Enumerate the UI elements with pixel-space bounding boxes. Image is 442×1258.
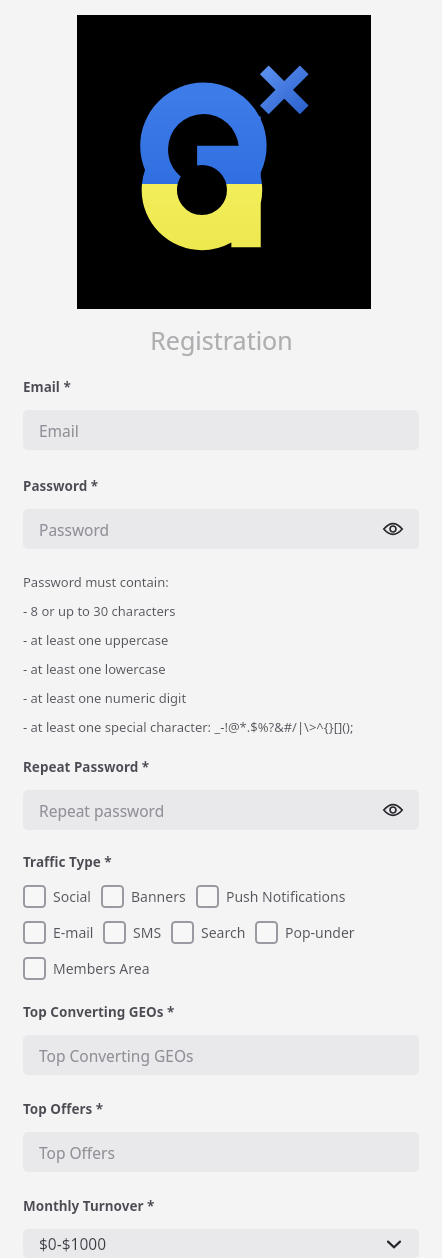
button[interactable]: E-mail [23, 918, 94, 947]
button[interactable]: Repeat password [23, 790, 419, 830]
button[interactable]: Banners [101, 882, 186, 911]
button[interactable]: Push Notifications [196, 882, 346, 911]
button[interactable]: Top Converting GEOs [23, 1035, 419, 1075]
staticText: Traffic Type * [23, 853, 112, 871]
staticText: Password [39, 519, 110, 540]
staticText: Email [39, 420, 79, 441]
staticText: Social [53, 887, 91, 906]
staticText: Password must contain: [23, 573, 169, 591]
staticText: - 8 or up to 30 characters [23, 602, 176, 620]
staticText: SMS [133, 923, 162, 942]
staticText: Registration [150, 323, 293, 357]
staticText: Push Notifications [226, 887, 346, 906]
button[interactable]: Monthly Turnover selector [23, 1229, 419, 1258]
staticText: Top Converting GEOs [39, 1045, 194, 1066]
staticText: Top Offers [39, 1142, 115, 1163]
staticText: Pop-under [285, 923, 355, 942]
staticText: E-mail [53, 923, 94, 942]
staticText: Repeat Password * [23, 758, 150, 776]
button[interactable]: Show password [381, 517, 405, 541]
staticText: $0-$1000 [39, 1233, 107, 1254]
staticText: Password * [23, 477, 99, 495]
button[interactable]: SMS [103, 918, 162, 947]
button[interactable]: Password [23, 509, 419, 549]
button[interactable]: Pop-under [255, 918, 355, 947]
button[interactable]: Search [171, 918, 246, 947]
staticText: Members Area [53, 959, 150, 978]
staticText: - at least one uppercase [23, 631, 169, 649]
staticText: - at least one numeric digit [23, 689, 187, 707]
staticText: Banners [131, 887, 186, 906]
staticText: Repeat password [39, 800, 165, 821]
staticText: Top Offers * [23, 1100, 104, 1118]
staticText: - at least one special character: _-!@*.… [23, 718, 354, 736]
staticText: Email * [23, 378, 71, 396]
button[interactable]: Show password [381, 798, 405, 822]
staticText: Search [201, 923, 246, 942]
button[interactable]: Members Area [23, 954, 150, 983]
button[interactable]: Top Offers [23, 1132, 419, 1172]
button[interactable]: Social [23, 882, 91, 911]
staticText: Top Converting GEOs * [23, 1003, 175, 1021]
button[interactable]: Email [23, 410, 419, 450]
staticText: - at least one lowercase [23, 660, 166, 678]
staticText: Monthly Turnover * [23, 1197, 155, 1215]
